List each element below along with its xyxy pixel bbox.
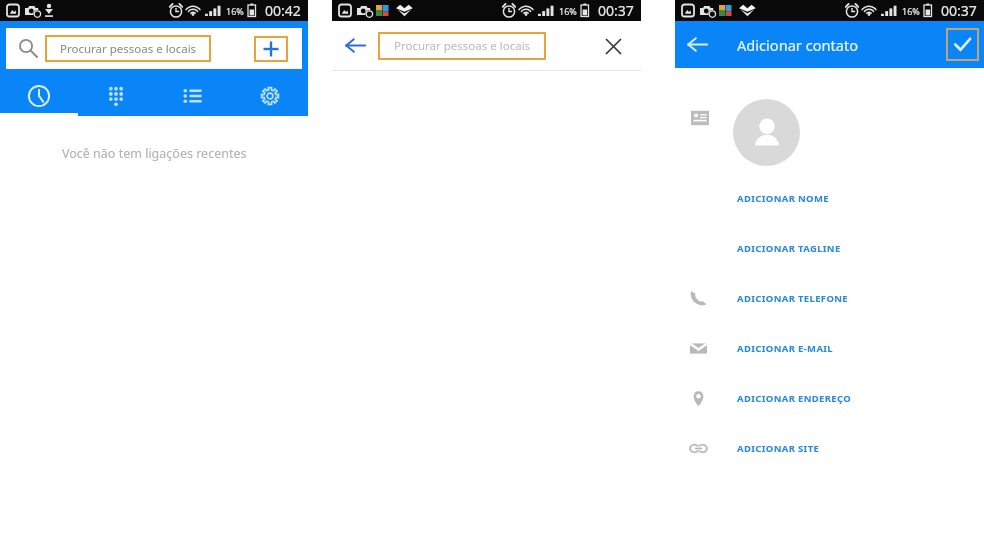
staticText: ADICIONAR ENDEREÇO	[737, 392, 852, 405]
staticText: 00:37	[598, 1, 634, 20]
button[interactable]: ADICIONAR TELEFONE	[675, 276, 984, 320]
staticText: 16%	[226, 5, 244, 17]
staticText: ADICIONAR E-MAIL	[737, 342, 834, 355]
button[interactable]: Adicionar contato	[254, 36, 288, 62]
button[interactable]: Teclado	[77, 69, 154, 116]
button[interactable]: ADICIONAR ENDEREÇO	[675, 376, 984, 420]
button[interactable]: ADICIONAR SITE	[675, 426, 984, 470]
staticText: ADICIONAR TELEFONE	[737, 292, 849, 305]
button[interactable]: ADICIONAR E-MAIL	[675, 326, 984, 370]
button[interactable]: ADICIONAR NOME	[675, 176, 984, 220]
staticText: 00:37	[941, 1, 977, 20]
staticText: 16%	[559, 5, 577, 17]
button[interactable]: Salvar	[946, 28, 979, 61]
staticText: 16%	[902, 5, 920, 17]
button[interactable]: Fechar	[598, 31, 628, 61]
staticText: ADICIONAR NOME	[737, 192, 829, 205]
button[interactable]: Procurar pessoas e locais	[6, 28, 302, 69]
staticText: ADICIONAR SITE	[737, 442, 820, 455]
button[interactable]: Configurações	[231, 69, 308, 116]
button[interactable]: Recentes	[0, 69, 77, 116]
button[interactable]: Adicionar foto	[733, 99, 800, 166]
staticText: ADICIONAR TAGLINE	[737, 242, 841, 255]
staticText: Você não tem ligações recentes	[62, 145, 247, 162]
staticText: Procurar pessoas e locais	[394, 38, 531, 54]
staticText: 00:42	[265, 1, 301, 20]
staticText: Procurar pessoas e locais	[60, 41, 197, 57]
button[interactable]: Voltar	[675, 21, 720, 68]
button[interactable]: ADICIONAR TAGLINE	[675, 226, 984, 270]
button[interactable]: Voltar	[332, 21, 378, 70]
button[interactable]: Contatos	[154, 69, 231, 116]
staticText: Adicionar contato	[737, 35, 859, 55]
